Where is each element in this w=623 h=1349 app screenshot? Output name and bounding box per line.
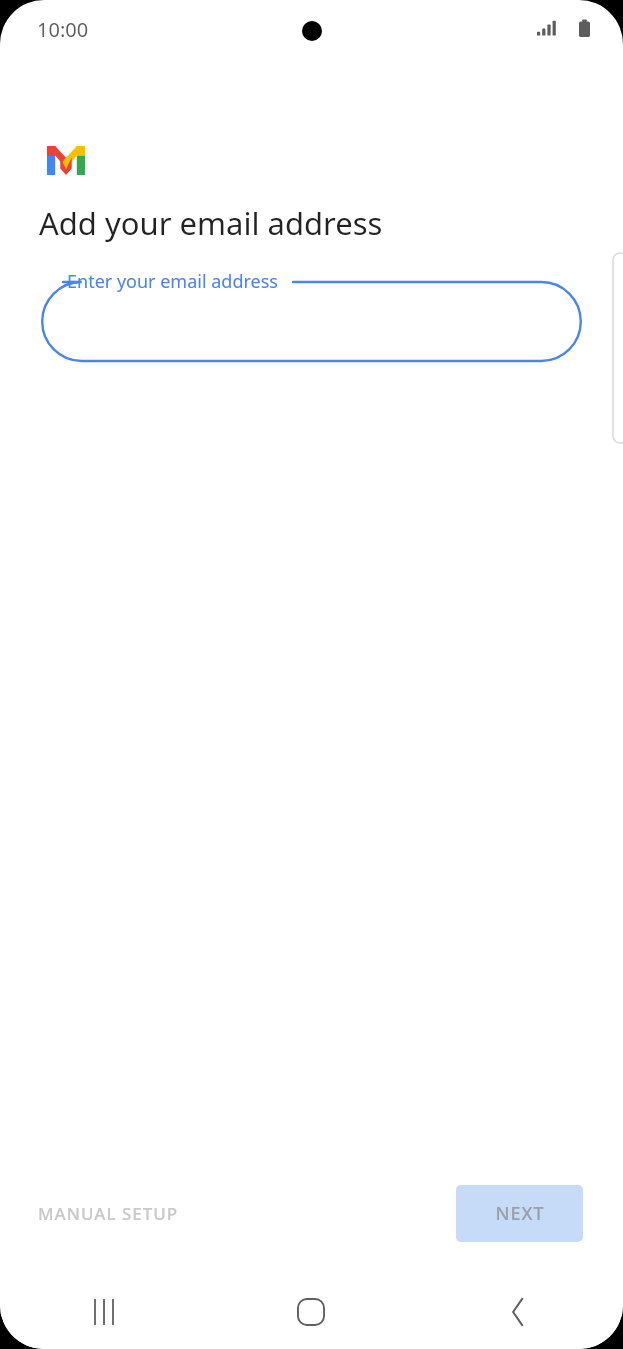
staticText: 10:00 xyxy=(37,16,89,43)
staticText: Add your email address xyxy=(39,202,383,244)
button[interactable]: Home xyxy=(207,1275,415,1349)
staticText: Enter your email address xyxy=(67,269,278,294)
button[interactable]: Recent apps xyxy=(0,1275,207,1349)
staticText: NEXT xyxy=(495,1201,545,1226)
button[interactable]: Enter your email address xyxy=(41,266,582,362)
button[interactable]: MANUAL SETUP xyxy=(22,1188,195,1239)
staticText: MANUAL SETUP xyxy=(38,1202,179,1225)
button[interactable]: NEXT xyxy=(456,1185,583,1242)
button[interactable]: Back xyxy=(415,1275,623,1349)
